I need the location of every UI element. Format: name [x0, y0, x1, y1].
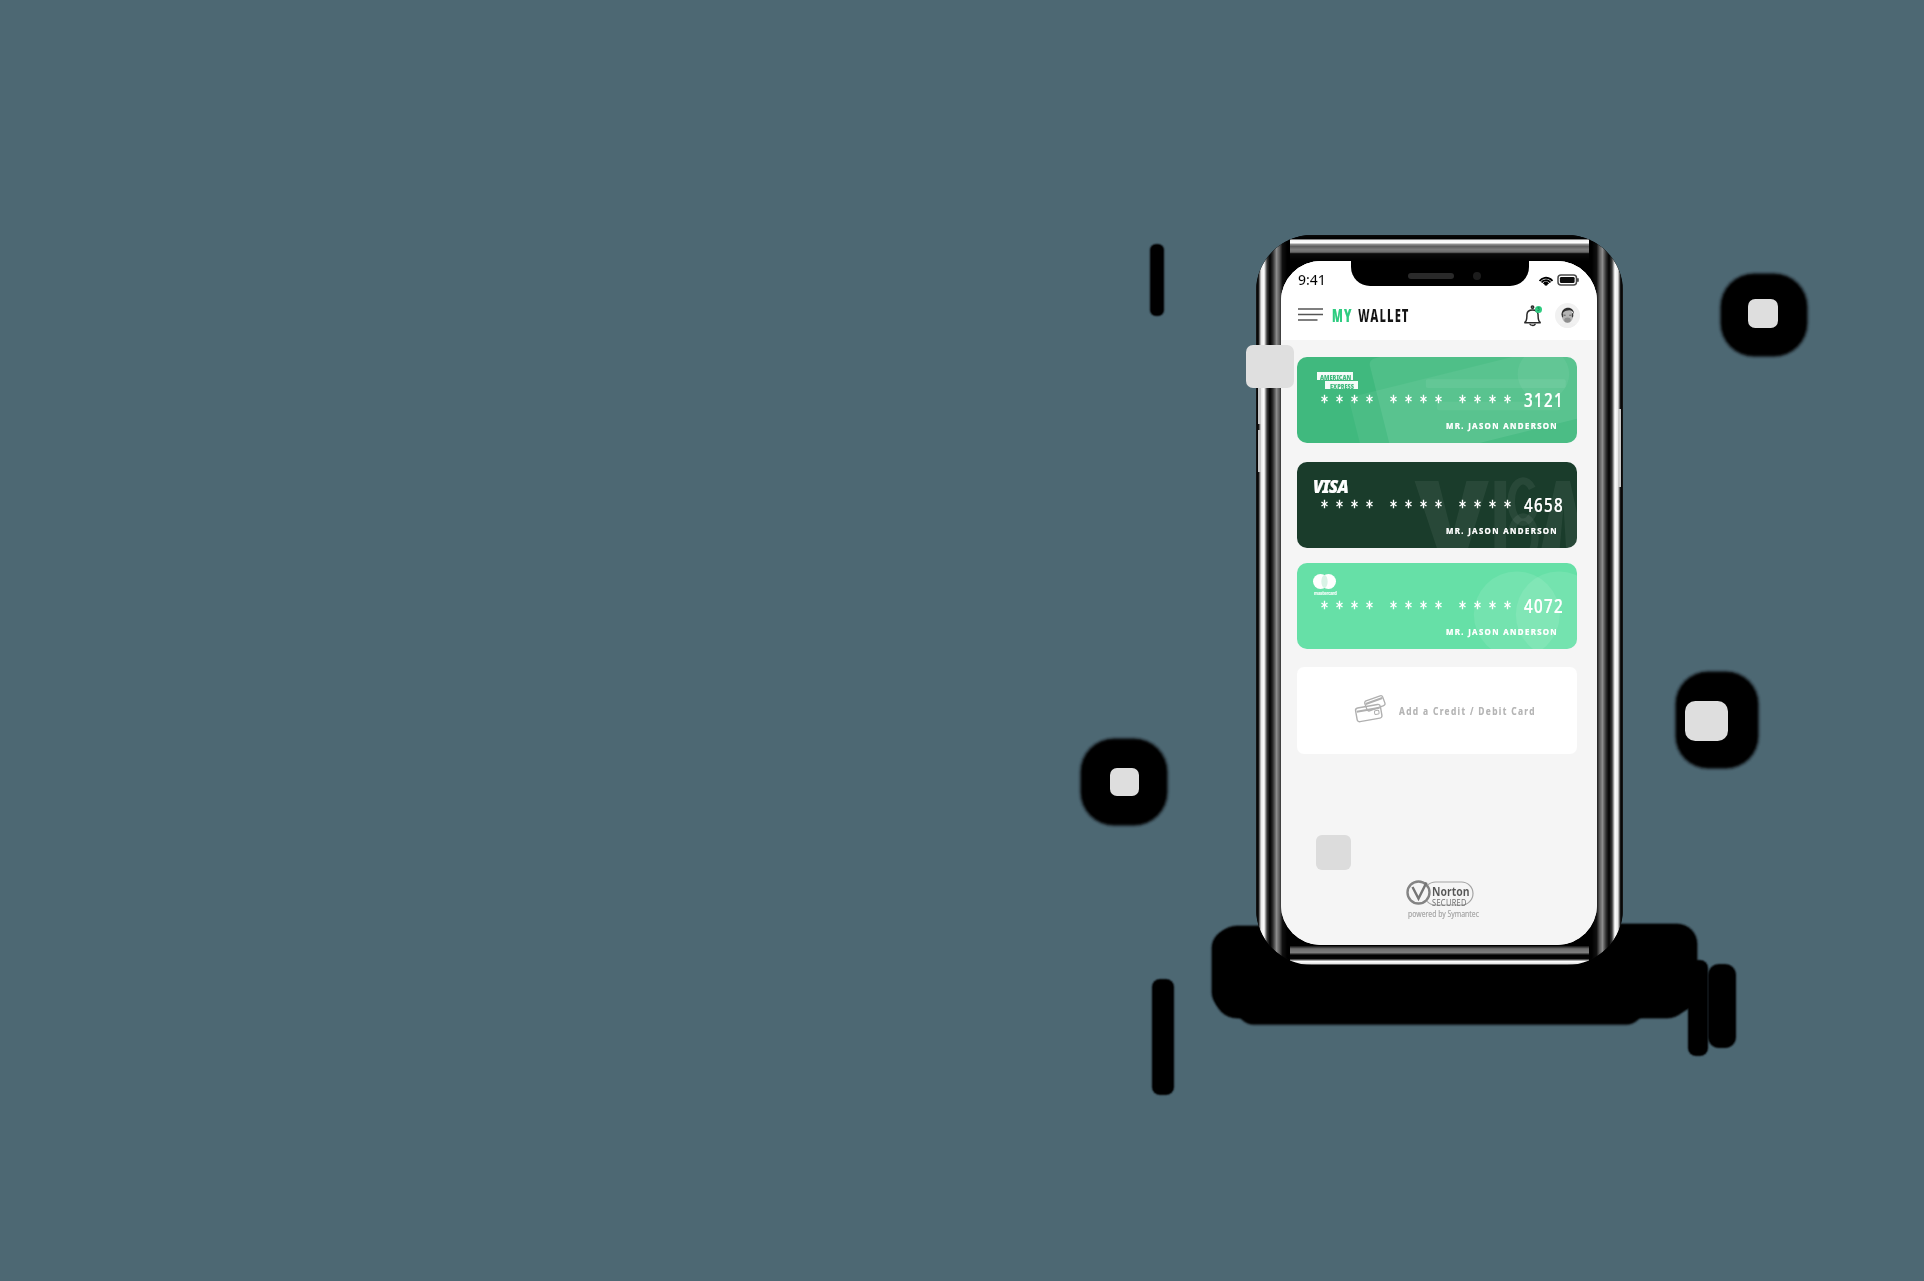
- staticText: 3: [1537, 306, 1540, 313]
- button[interactable]: Add a Credit / Debit Card: [1297, 667, 1577, 754]
- staticText: 3121: [1524, 387, 1564, 413]
- staticText: MR. JASON ANDERSON: [1446, 524, 1559, 537]
- staticText: powered by Symantec: [1408, 908, 1479, 919]
- button[interactable]: VISA: [1297, 462, 1577, 548]
- button[interactable]: Menu: [1298, 305, 1328, 327]
- button[interactable]: AMERICAN: [1297, 357, 1577, 443]
- staticText: 4072: [1524, 593, 1564, 619]
- staticText: Add a Credit / Debit Card: [1399, 704, 1536, 718]
- staticText: mastercard: [1314, 590, 1337, 597]
- staticText: MR. JASON ANDERSON: [1446, 419, 1559, 432]
- staticText: SECURED: [1432, 897, 1467, 909]
- staticText: Norton: [1432, 883, 1470, 899]
- staticText: MR. JASON ANDERSON: [1446, 625, 1559, 638]
- staticText: VISA: [1313, 474, 1349, 499]
- staticText: MY: [1332, 304, 1352, 327]
- staticText: 9:41: [1298, 270, 1326, 289]
- staticText: WALLET: [1358, 304, 1410, 327]
- button[interactable]: mastercard: [1297, 563, 1577, 649]
- staticText: 4658: [1524, 492, 1564, 518]
- button[interactable]: Profile: [1555, 303, 1580, 328]
- staticText: AMERICAN: [1320, 372, 1352, 380]
- button[interactable]: Notifications: [1521, 302, 1543, 328]
- staticText: EXPRESS: [1330, 381, 1354, 389]
